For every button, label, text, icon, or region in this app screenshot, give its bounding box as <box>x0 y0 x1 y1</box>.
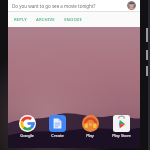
button[interactable]: Google <box>14 115 40 138</box>
button[interactable]: Sender avatar <box>127 1 136 10</box>
button[interactable]: SNOOZE <box>63 16 83 24</box>
button[interactable]: REPLY <box>13 16 28 24</box>
button[interactable]: Create <box>44 115 70 138</box>
button[interactable]: Play Store <box>108 115 134 138</box>
other: Create <box>49 115 66 132</box>
button[interactable]: Do you want to go see a movie tonight? <box>8 0 140 11</box>
other: Play Store <box>113 115 130 132</box>
staticText: Do you want to go see a movie tonight? <box>12 3 96 9</box>
staticText: REPLY <box>14 17 27 23</box>
staticText: Play <box>86 133 94 138</box>
other: Google <box>19 115 36 132</box>
button[interactable]: Play <box>77 115 103 138</box>
staticText: ARCHIVE <box>36 17 55 23</box>
staticText: Play Store <box>112 133 131 138</box>
staticText: Create <box>51 133 64 138</box>
staticText: Google <box>20 133 34 138</box>
button[interactable]: ARCHIVE <box>35 16 56 24</box>
other: Play <box>82 115 99 132</box>
staticText: SNOOZE <box>64 17 82 23</box>
